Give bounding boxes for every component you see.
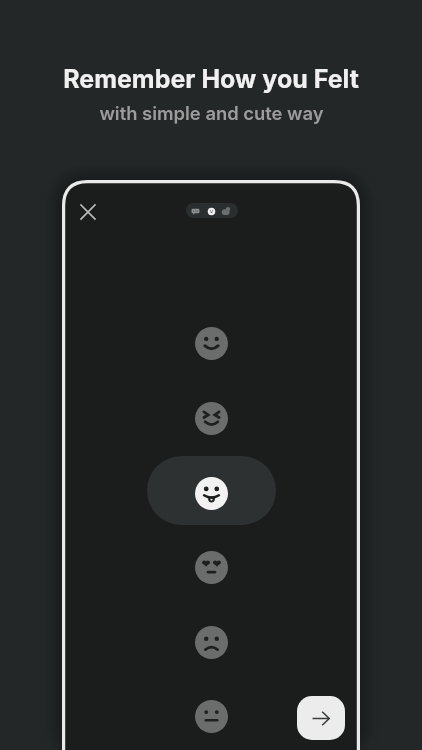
staticText: with simple and cute way: [99, 102, 324, 124]
button[interactable]: Chat: [191, 207, 200, 216]
button[interactable]: Next: [297, 696, 345, 740]
button[interactable]: Mood: [195, 477, 228, 510]
button[interactable]: Mood: [195, 327, 228, 360]
button[interactable]: Emoji: [207, 207, 216, 216]
button[interactable]: Stickers: [221, 206, 231, 216]
staticText: Remember How you Felt: [63, 64, 359, 94]
button[interactable]: Close: [77, 201, 99, 223]
button[interactable]: Mood: [195, 551, 228, 584]
button[interactable]: Mood: [195, 626, 228, 659]
button[interactable]: Mood: [195, 700, 228, 733]
button[interactable]: Mood: [195, 402, 228, 435]
button[interactable]: Selected mood: [147, 456, 276, 525]
